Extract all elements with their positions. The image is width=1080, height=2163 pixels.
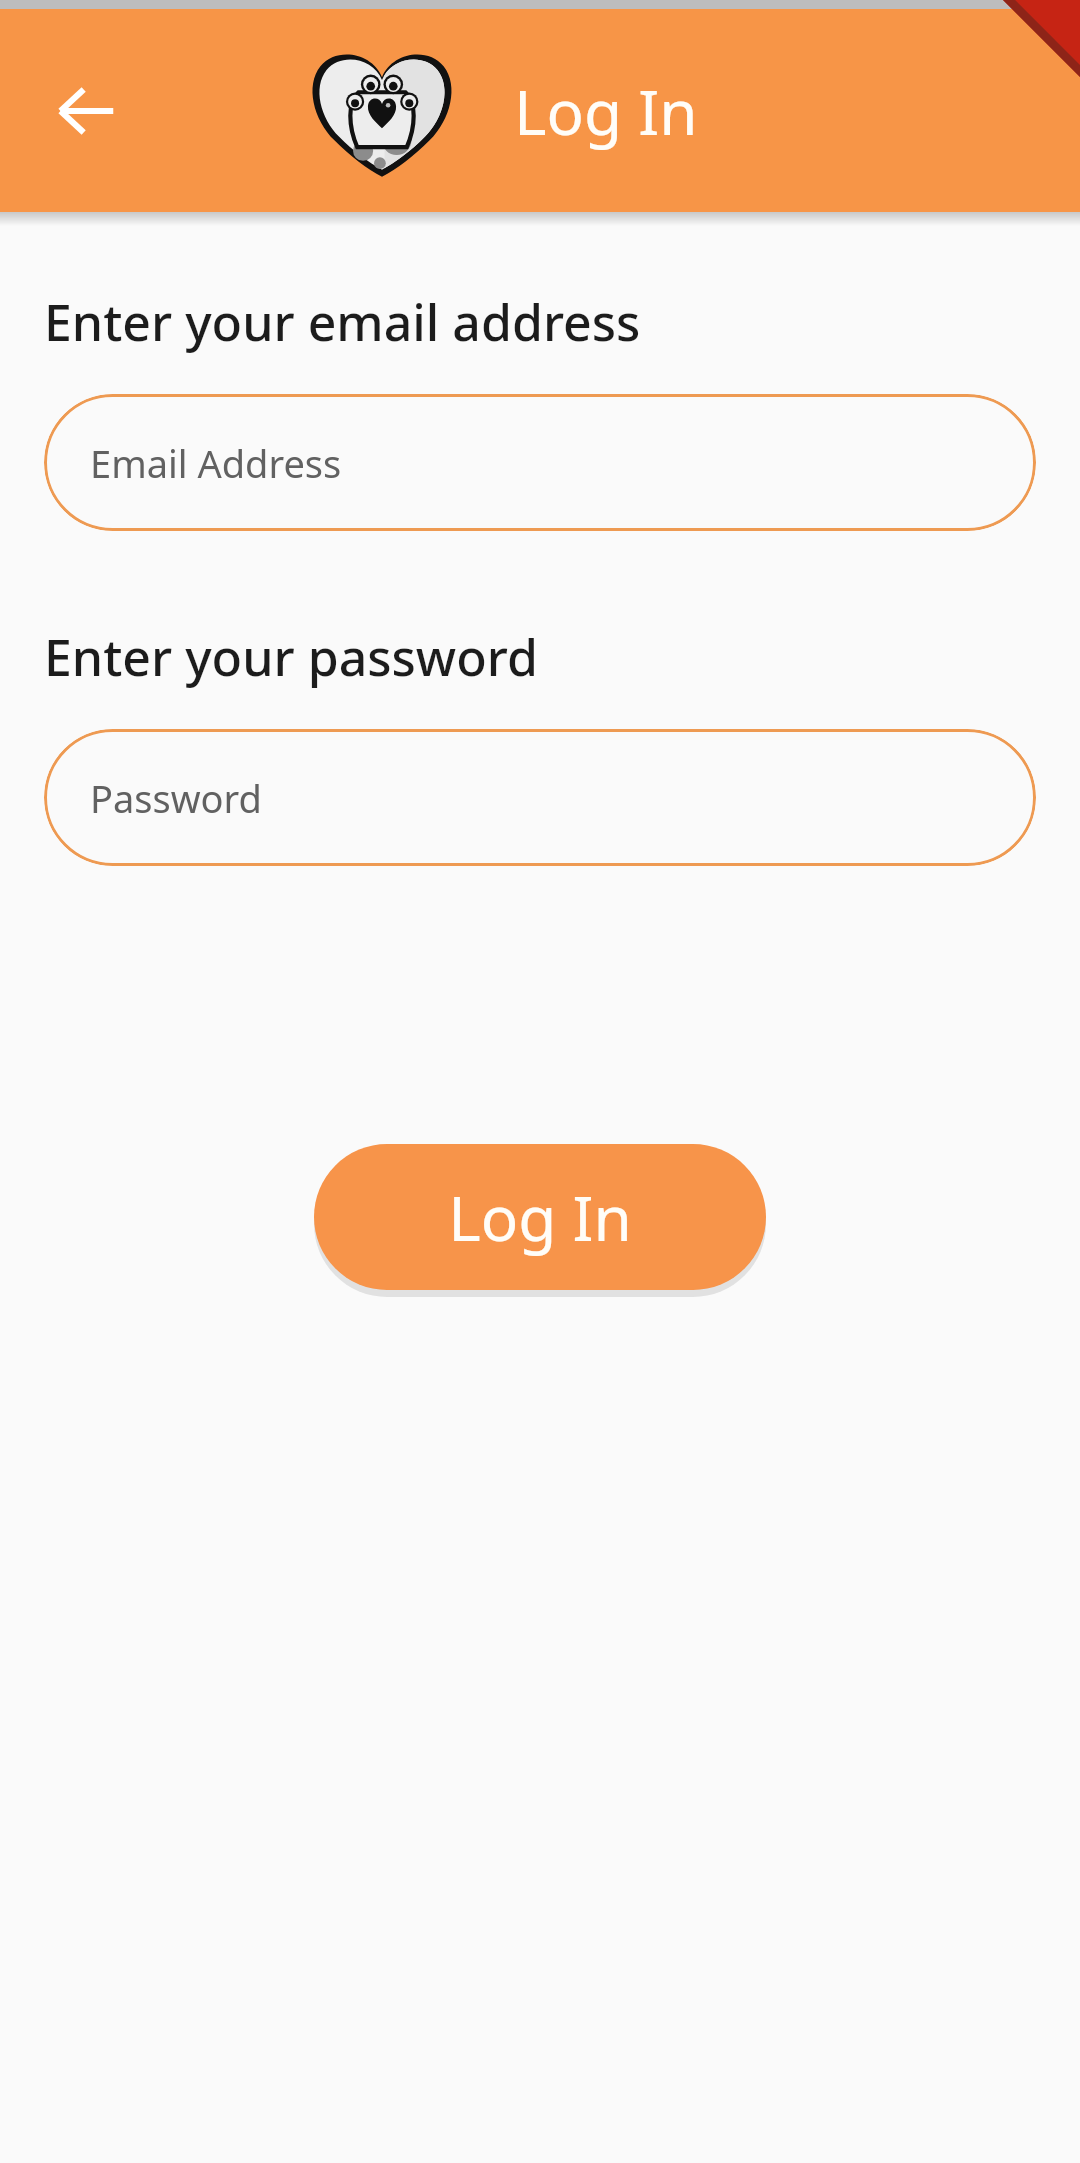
button[interactable]: Log In <box>314 1144 766 1290</box>
button[interactable]: Password <box>44 729 1036 866</box>
staticText: Log In <box>448 1175 632 1259</box>
staticText: Log In <box>514 69 698 153</box>
staticText: Email Address <box>90 437 342 489</box>
staticText: Enter your email address <box>44 288 641 356</box>
button[interactable]: Email Address <box>44 394 1036 531</box>
staticText: Password <box>90 772 262 824</box>
button[interactable]: Back <box>36 61 136 161</box>
staticText: Enter your password <box>44 623 538 691</box>
